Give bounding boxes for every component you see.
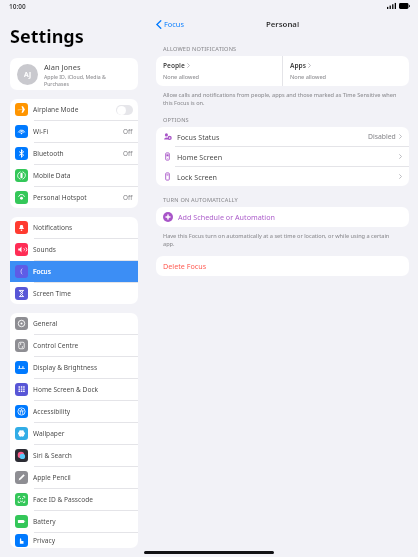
staticText: Focus Status: [177, 132, 220, 142]
staticText: TURN ON AUTOMATICALLY: [163, 196, 238, 204]
button[interactable]: Screen Time: [10, 283, 138, 304]
staticText: Sounds: [33, 245, 56, 254]
staticText: Notifications: [33, 223, 73, 232]
staticText: Display & Brightness: [33, 363, 98, 372]
staticText: OPTIONS: [163, 116, 189, 124]
staticText: Off: [123, 149, 133, 158]
staticText: Face ID & Passcode: [33, 495, 93, 504]
staticText: Battery: [33, 517, 56, 526]
staticText: Apps: [290, 61, 306, 70]
staticText: Personal: [266, 19, 300, 30]
staticText: 10:00: [9, 2, 26, 11]
staticText: Add Schedule or Automation: [178, 212, 275, 222]
staticText: AJ: [24, 70, 31, 80]
staticText: Personal Hotspot: [33, 193, 87, 202]
staticText: Privacy: [33, 536, 55, 545]
staticText: Airplane Mode: [33, 105, 79, 114]
button[interactable]: Add Schedule or Automation: [156, 207, 409, 227]
staticText: None allowed: [163, 73, 199, 81]
button[interactable]: Accessibility: [10, 401, 138, 422]
button[interactable]: Focus: [10, 261, 138, 282]
button[interactable]: Mobile Data: [10, 165, 138, 186]
button[interactable]: Face ID & Passcode: [10, 489, 138, 510]
button[interactable]: Home Screen & Dock: [10, 379, 138, 400]
staticText: Screen Time: [33, 289, 71, 298]
staticText: Disabled: [368, 132, 396, 141]
button[interactable]: General: [10, 313, 138, 334]
button[interactable]: Focus Status: [156, 127, 409, 146]
staticText: Alan Jones: [44, 62, 81, 72]
button[interactable]: Home Screen: [156, 147, 409, 166]
staticText: Apple Pencil: [33, 473, 71, 482]
staticText: Mobile Data: [33, 171, 71, 180]
button[interactable]: Delete Focus: [156, 256, 409, 276]
button[interactable]: Privacy: [10, 533, 138, 548]
staticText: Allow calls and notifications from peopl…: [163, 91, 402, 107]
staticText: Settings: [10, 24, 84, 49]
button[interactable]: Focus: [156, 17, 189, 31]
button[interactable]: Airplane Mode: [10, 99, 138, 120]
staticText: Off: [123, 193, 133, 202]
button[interactable]: Battery: [10, 511, 138, 532]
staticText: Home Screen: [177, 152, 223, 162]
button[interactable]: Display & Brightness: [10, 357, 138, 378]
button[interactable]: Airplane Mode toggle: [116, 105, 133, 115]
button[interactable]: Siri & Search: [10, 445, 138, 466]
staticText: Wallpaper: [33, 429, 65, 438]
staticText: Delete Focus: [163, 261, 207, 271]
button[interactable]: Bluetooth: [10, 143, 138, 164]
staticText: Control Centre: [33, 341, 79, 350]
button[interactable]: Apple Pencil: [10, 467, 138, 488]
staticText: People: [163, 61, 185, 70]
button[interactable]: People: [156, 56, 282, 86]
staticText: Apple ID, iCloud, Media & Purchases: [44, 73, 131, 87]
button[interactable]: Control Centre: [10, 335, 138, 356]
staticText: Focus: [164, 19, 184, 29]
button[interactable]: Lock Screen: [156, 167, 409, 186]
button[interactable]: Personal Hotspot: [10, 187, 138, 208]
staticText: ALLOWED NOTIFICATIONS: [163, 45, 237, 53]
button[interactable]: Notifications: [10, 217, 138, 238]
staticText: Focus: [33, 267, 51, 276]
staticText: Bluetooth: [33, 149, 64, 158]
staticText: Home Screen & Dock: [33, 385, 99, 394]
staticText: Wi-Fi: [33, 127, 49, 136]
staticText: Lock Screen: [177, 172, 218, 182]
staticText: Accessibility: [33, 407, 71, 416]
staticText: Off: [123, 127, 133, 136]
staticText: None allowed: [290, 73, 326, 81]
staticText: Have this Focus turn on automatically at…: [163, 232, 402, 248]
button[interactable]: AJ: [10, 58, 138, 90]
button[interactable]: Wi-Fi: [10, 121, 138, 142]
button[interactable]: Apps: [283, 56, 409, 86]
staticText: General: [33, 319, 58, 328]
button[interactable]: Wallpaper: [10, 423, 138, 444]
staticText: Siri & Search: [33, 451, 72, 460]
button[interactable]: Sounds: [10, 239, 138, 260]
